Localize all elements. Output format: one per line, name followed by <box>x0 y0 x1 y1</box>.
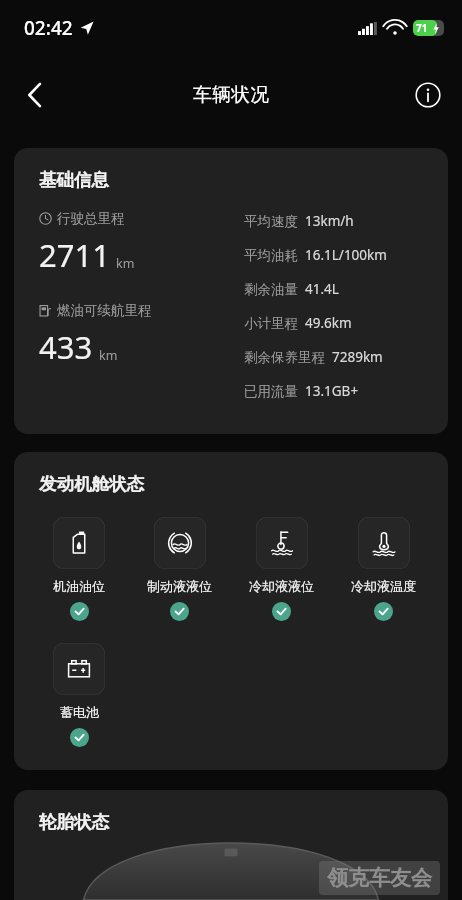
staticText: 16.1L/100km <box>305 246 387 264</box>
staticText: 领克车友会 <box>327 865 432 891</box>
staticText: 基础信息 <box>39 169 109 191</box>
staticText: 蓄电池 <box>60 704 99 720</box>
button[interactable]: 制动液液位 <box>147 517 212 621</box>
staticText: 7289km <box>332 348 383 366</box>
staticText: 2711 <box>39 234 110 276</box>
staticText: 发动机舱状态 <box>39 473 144 495</box>
button[interactable]: Back <box>10 71 58 119</box>
staticText: 平均油耗 <box>244 247 298 264</box>
button[interactable]: 基础信息 <box>14 148 448 434</box>
staticText: 行驶总里程 <box>57 210 125 227</box>
staticText: 燃油可续航里程 <box>57 302 152 319</box>
staticText: 机油油位 <box>53 578 105 594</box>
staticText: 冷却液液位 <box>249 578 314 594</box>
staticText: 02:42 <box>24 15 73 41</box>
button[interactable]: 冷却液液位 <box>249 517 314 621</box>
button[interactable]: Info <box>406 73 450 117</box>
staticText: 433 <box>39 326 93 368</box>
button[interactable]: 发动机舱状态 <box>14 452 448 770</box>
staticText: 冷却液温度 <box>351 578 416 594</box>
button[interactable]: 机油油位 <box>53 517 105 621</box>
staticText: 车辆状况 <box>193 83 269 107</box>
staticText: 71 <box>416 21 428 35</box>
staticText: km <box>116 255 135 272</box>
staticText: 已用流量 <box>244 383 298 400</box>
staticText: 13.1GB+ <box>305 382 359 400</box>
staticText: 49.6km <box>305 314 352 332</box>
staticText: 13km/h <box>305 212 354 230</box>
staticText: 小计里程 <box>244 315 298 332</box>
staticText: 制动液液位 <box>147 578 212 594</box>
staticText: 41.4L <box>305 280 339 298</box>
staticText: 剩余保养里程 <box>244 349 325 366</box>
button[interactable]: 冷却液温度 <box>351 517 416 621</box>
button[interactable]: 蓄电池 <box>53 643 105 747</box>
staticText: 轮胎状态 <box>39 811 109 833</box>
staticText: 剩余油量 <box>244 281 298 298</box>
button[interactable]: 轮胎状态 <box>14 790 448 900</box>
staticText: 平均速度 <box>244 213 298 230</box>
staticText: km <box>99 347 118 364</box>
